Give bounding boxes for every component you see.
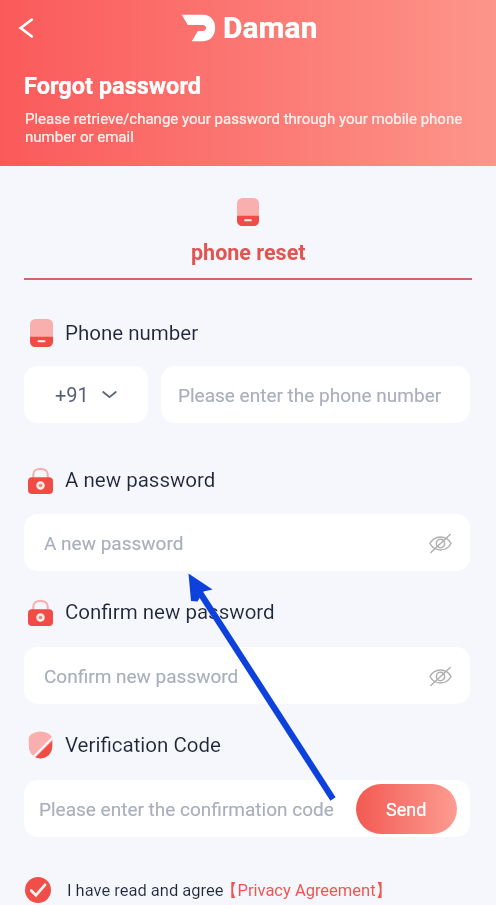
- button[interactable]: +91: [24, 366, 148, 423]
- button[interactable]: Confirm new password: [24, 647, 470, 704]
- staticText: A new password: [44, 532, 184, 554]
- button[interactable]: A new password: [24, 514, 470, 571]
- button[interactable]: Show password: [423, 526, 457, 560]
- button[interactable]: I have read and agree: [67, 880, 396, 901]
- staticText: Phone number: [65, 321, 199, 345]
- staticText: Please enter the confirmation code: [39, 798, 334, 820]
- staticText: Daman: [223, 10, 318, 45]
- staticText: Confirm new password: [65, 600, 275, 624]
- button[interactable]: Back: [6, 8, 46, 48]
- button[interactable]: Send: [356, 784, 457, 834]
- button[interactable]: Show password: [423, 659, 457, 693]
- staticText: Verification Code: [65, 733, 221, 757]
- staticText: 【Privacy Agreement】: [221, 880, 393, 901]
- staticText: I have read and agree: [67, 881, 224, 900]
- staticText: Please enter the phone number: [178, 384, 442, 406]
- staticText: Send: [386, 799, 427, 820]
- staticText: Please retrieve/change your password thr…: [25, 110, 470, 146]
- staticText: Confirm new password: [44, 665, 239, 687]
- staticText: Forgot password: [24, 72, 201, 100]
- button[interactable]: Please enter the phone number: [161, 366, 470, 423]
- staticText: +91: [55, 383, 89, 406]
- staticText: A new password: [65, 468, 216, 492]
- button[interactable]: Agree to privacy agreement: [22, 874, 54, 905]
- staticText: phone reset: [191, 240, 306, 265]
